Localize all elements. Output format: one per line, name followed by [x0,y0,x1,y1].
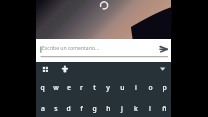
staticText: k [134,104,138,113]
staticText: j [121,104,123,113]
button[interactable]: Hide keyboard [157,64,168,75]
button[interactable]: h [101,98,115,117]
staticText: a [41,104,45,113]
staticText: r [80,83,83,92]
button[interactable]: k [129,98,143,117]
staticText: d [66,104,71,113]
button[interactable]: o [143,77,157,98]
button[interactable]: i [129,77,143,98]
button[interactable]: t [88,77,101,98]
staticText: l [149,104,151,113]
button[interactable]: j [115,98,129,117]
button[interactable]: s [49,98,62,117]
staticText: q [40,83,45,92]
staticText: g [92,104,97,113]
staticText: t [93,83,96,92]
button[interactable]: q [36,77,49,98]
button[interactable]: d [62,98,75,117]
staticText: Escribe un comentario... [42,45,100,52]
staticText: e [67,83,71,92]
button[interactable]: r [75,77,88,98]
staticText: ñ [162,104,167,113]
button[interactable]: g [88,98,101,117]
button[interactable]: f [75,98,88,117]
button[interactable]: u [115,77,129,98]
button[interactable]: y [101,77,115,98]
button[interactable]: p [157,77,171,98]
button[interactable]: Stickers [60,64,71,75]
staticText: w [53,83,59,92]
staticText: p [162,83,167,92]
button[interactable]: l [143,98,157,117]
button[interactable]: Send [156,42,170,56]
staticText: h [106,104,111,113]
button[interactable]: w [49,77,62,98]
staticText: u [120,83,125,92]
staticText: i [135,83,137,92]
button[interactable]: a [36,98,49,117]
staticText: s [54,104,58,113]
button[interactable]: Keyboard features [40,64,51,75]
button[interactable]: ñ [157,98,171,117]
staticText: y [106,83,110,92]
staticText: o [148,83,153,92]
button[interactable]: e [62,77,75,98]
staticText: f [80,104,83,113]
